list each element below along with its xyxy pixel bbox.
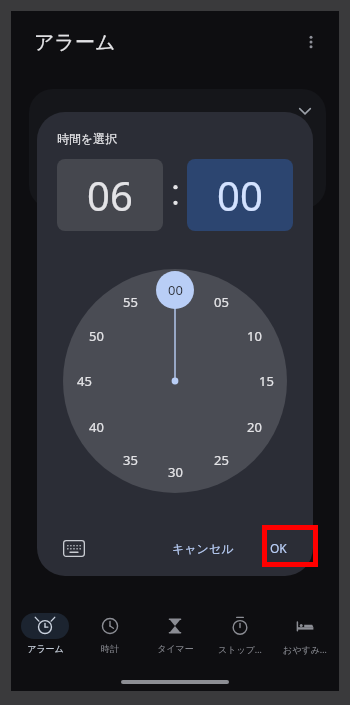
staticText: 時間を選択 [57,131,118,146]
staticText: アラーム [27,643,64,654]
staticText: タイマー [157,643,194,654]
staticText: 55 [123,293,138,311]
staticText: 35 [123,451,138,469]
staticText: キャンセル [172,541,234,556]
staticText: 15 [259,372,274,390]
button[interactable]: Expand [29,89,326,209]
staticText: 30 [168,463,183,481]
button[interactable]: アラーム [14,613,76,654]
staticText: 時計 [101,643,119,654]
staticText: 20 [247,418,262,436]
staticText: OK [270,540,287,556]
button[interactable]: 06 [57,159,163,231]
staticText: 50 [89,327,104,345]
button[interactable]: 00 [187,159,293,231]
staticText: 06 [87,168,133,222]
button[interactable]: More options [291,22,331,62]
staticText: 25 [214,451,229,469]
staticText: 40 [89,418,104,436]
button[interactable]: Switch to text input [59,533,89,563]
staticText: おやすみ… [283,643,327,655]
staticText: 45 [77,372,92,390]
button[interactable]: 00 [63,269,287,493]
staticText: アラーム [34,30,116,55]
staticText: ストップ… [218,643,262,655]
button[interactable]: タイマー [144,613,206,654]
button[interactable]: 時計 [79,613,141,654]
button[interactable]: キャンセル [160,533,246,564]
staticText: 00 [217,168,263,222]
button[interactable]: OK [252,532,305,564]
button[interactable]: ストップ… [209,613,271,655]
staticText: 05 [214,293,229,311]
other: Expand [292,98,318,124]
staticText: 00 [168,281,183,299]
staticText: 10 [247,327,262,345]
button[interactable]: おやすみ… [274,613,336,655]
